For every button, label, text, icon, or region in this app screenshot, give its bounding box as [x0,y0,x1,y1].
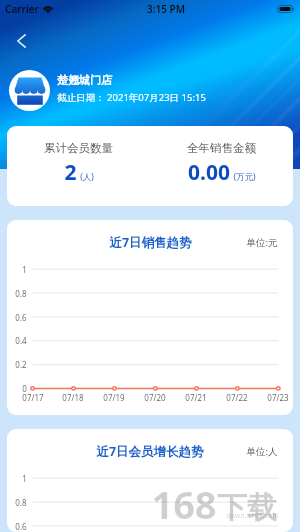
button[interactable]: 近7日会员增长趋势 [7,429,293,532]
staticText: 0.00 [188,158,230,187]
button[interactable]: 累计会员数量 [7,126,293,206]
staticText: 1 [22,473,27,484]
staticText: 07/21 [185,392,207,403]
staticText: 0 [22,383,27,394]
staticText: 下载 [217,489,277,527]
staticText: 截止日期： 2021年07月23日 15:15 [57,91,206,104]
staticText: 0.8 [15,497,27,508]
button[interactable]: 楚翘城门店 [9,70,206,111]
staticText: 07/22 [226,392,248,403]
staticText: 07/19 [103,392,125,403]
staticText: 全年销售金额 [187,141,256,155]
staticText: 07/23 [267,392,289,403]
staticText: (人) [80,171,94,183]
staticText: 168 [151,478,217,530]
staticText: 累计会员数量 [44,141,113,155]
staticText: 07/18 [62,392,84,403]
staticText: 3:15 PM [147,2,185,16]
staticText: 0.4 [15,335,27,346]
button[interactable]: 近7日销售趋势 [7,220,293,415]
staticText: 近7日会员增长趋势 [96,443,204,460]
staticText: 0.6 [15,312,27,323]
staticText: 2 [64,158,77,187]
staticText: 近7日销售趋势 [109,234,192,251]
button[interactable]: Back [9,28,34,53]
staticText: 07/17 [22,392,44,403]
staticText: 0.6 [15,521,27,532]
staticText: 1 [22,264,27,275]
staticText: 07/20 [144,392,166,403]
staticText: 单位:人 [246,445,278,458]
staticText: 单位:元 [246,236,278,249]
staticText: down.it168.com [226,511,279,521]
staticText: Carrier [5,2,39,16]
staticText: 0.2 [15,359,27,370]
staticText: (万元) [233,171,256,183]
staticText: 0.8 [15,288,27,299]
staticText: 楚翘城门店 [57,73,112,87]
